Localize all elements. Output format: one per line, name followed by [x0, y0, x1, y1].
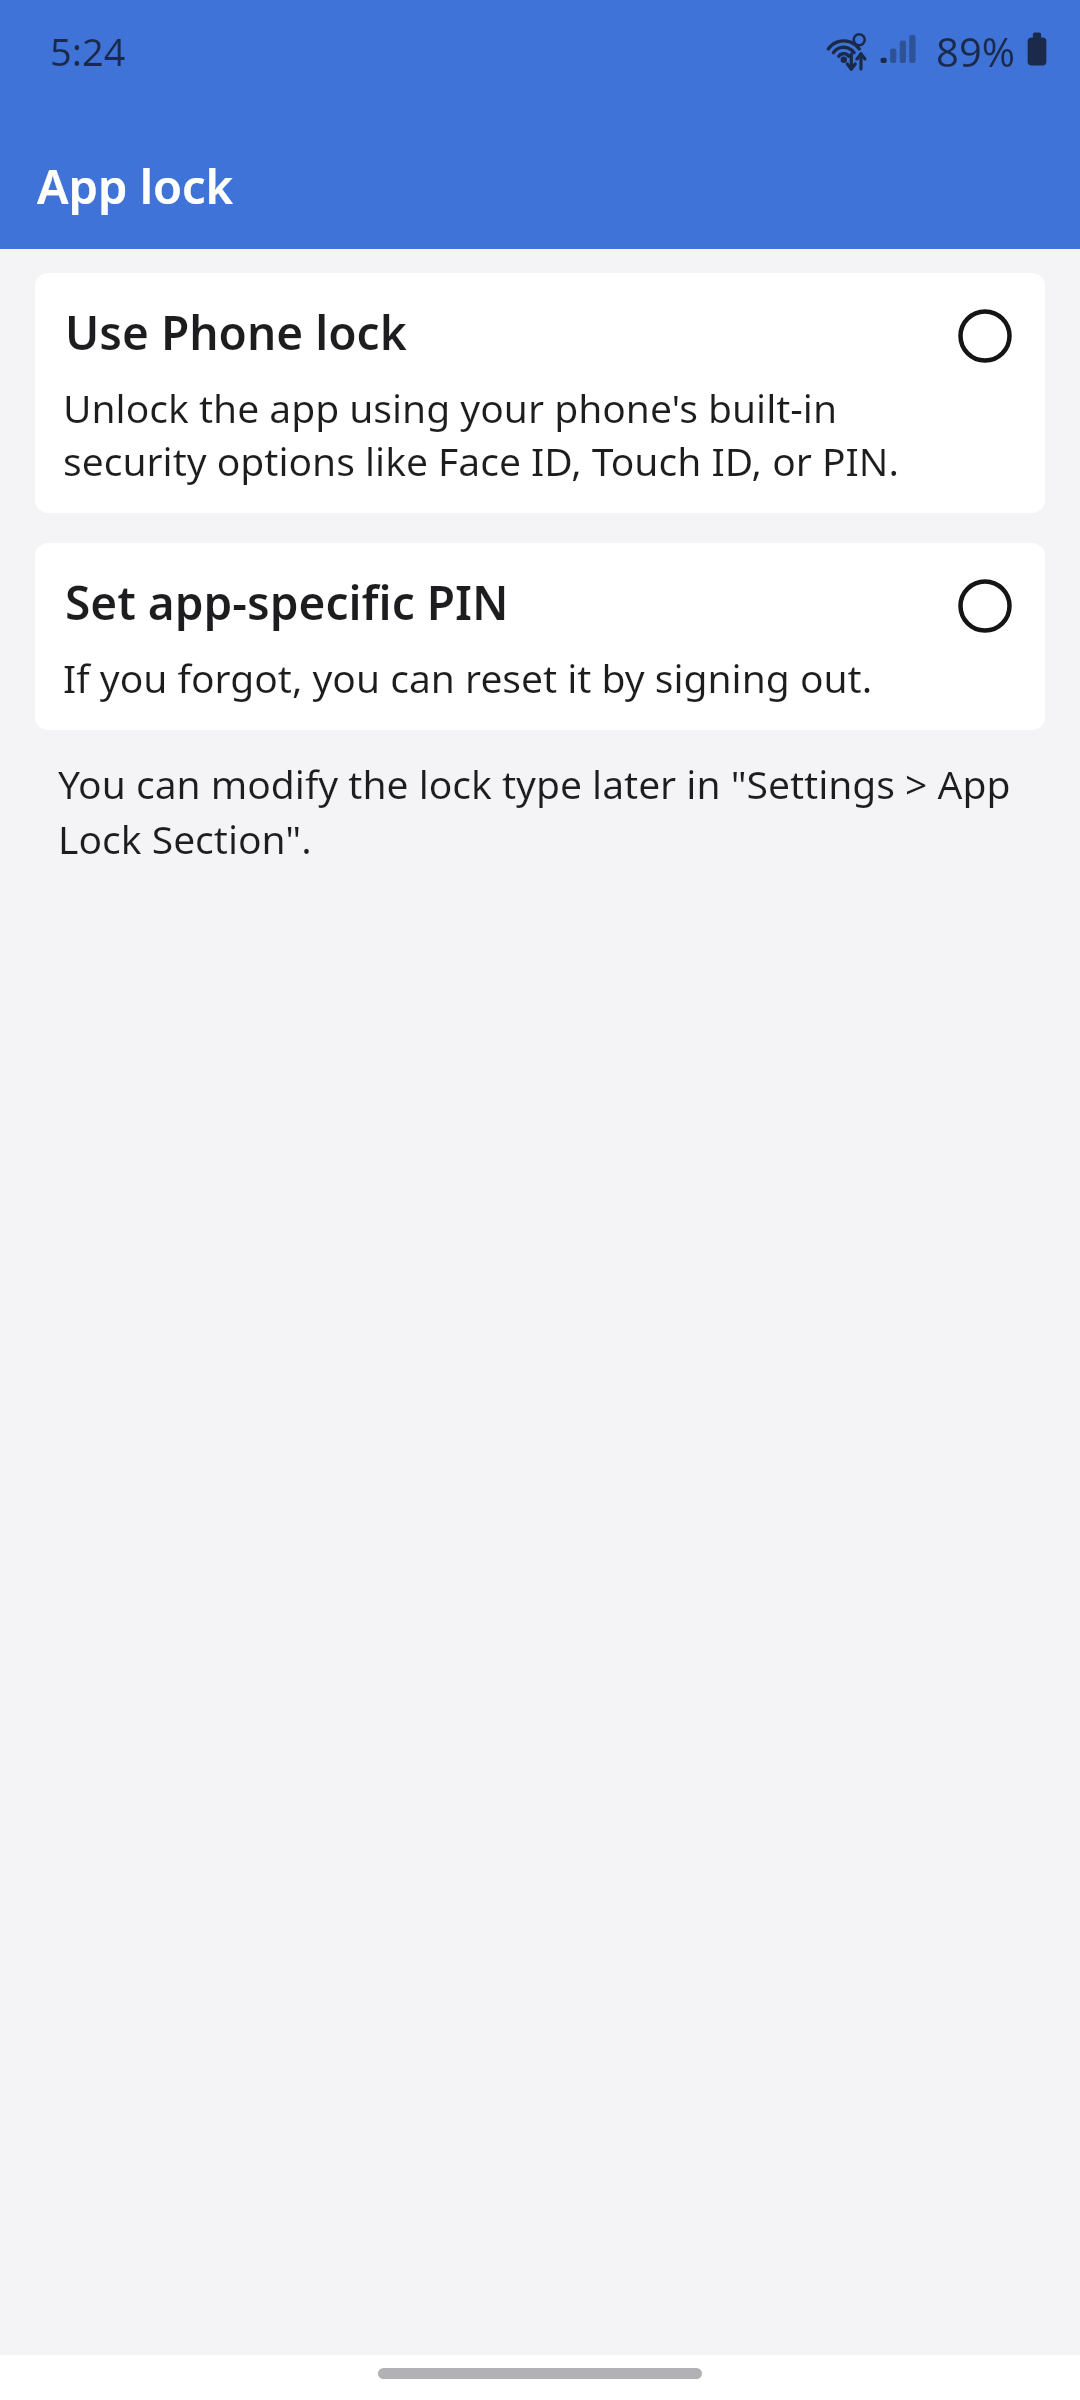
staticText: App lock	[37, 154, 234, 218]
other: Select Use Phone lock	[958, 309, 1012, 363]
staticText: Set app-specific PIN	[65, 571, 509, 634]
button[interactable]: Use Phone lock	[35, 273, 1045, 513]
staticText: Unlock the app using your phone's built-…	[63, 381, 899, 487]
staticText: If you forgot, you can reset it by signi…	[63, 651, 873, 704]
button[interactable]: Set app-specific PIN	[35, 543, 1045, 730]
staticText: You can modify the lock type later in "S…	[58, 757, 1011, 866]
staticText: 5:24	[50, 25, 126, 77]
staticText: Use Phone lock	[65, 301, 407, 364]
other: Select Set app-specific PIN	[958, 579, 1012, 633]
staticText: 89%	[936, 24, 1015, 78]
